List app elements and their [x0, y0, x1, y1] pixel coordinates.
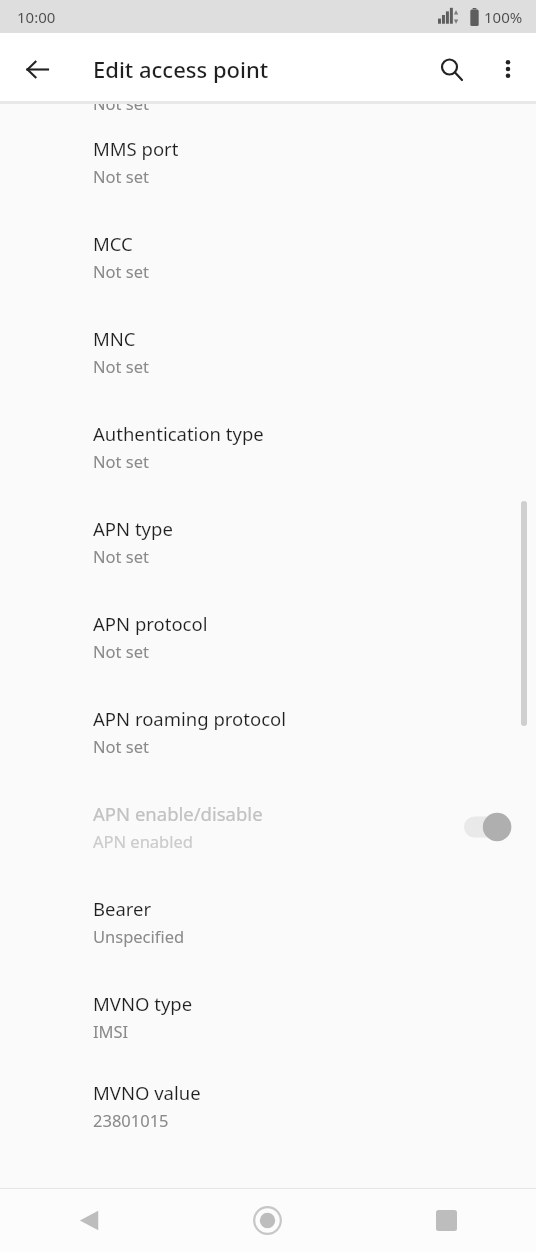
staticText: Not set: [93, 545, 149, 567]
staticText: Bearer: [93, 896, 152, 921]
staticText: Edit access point: [93, 54, 269, 84]
button[interactable]: Back: [0, 1189, 178, 1252]
button[interactable]: APN protocol: [0, 589, 536, 684]
staticText: MNC: [93, 326, 136, 351]
staticText: IMSI: [93, 1020, 129, 1042]
staticText: Not set: [93, 355, 149, 377]
staticText: MVNO value: [93, 1080, 201, 1105]
button[interactable]: Recent apps: [357, 1189, 536, 1252]
button[interactable]: MNC: [0, 304, 536, 399]
staticText: APN enable/disable: [93, 801, 263, 826]
button[interactable]: MVNO value: [0, 1064, 536, 1146]
staticText: 23801015: [93, 1109, 169, 1131]
button[interactable]: Home: [178, 1189, 357, 1252]
staticText: Authentication type: [93, 421, 264, 446]
staticText: APN type: [93, 516, 173, 541]
staticText: Not set: [93, 260, 149, 282]
staticText: 10:00: [17, 7, 56, 27]
button[interactable]: APN enable/disable toggle: [464, 810, 516, 844]
button[interactable]: APN roaming protocol: [0, 684, 536, 779]
staticText: MCC: [93, 231, 133, 256]
button[interactable]: Bearer: [0, 874, 536, 969]
button[interactable]: Search: [427, 45, 475, 93]
staticText: MMS port: [93, 136, 179, 161]
button[interactable]: Navigate up: [13, 45, 61, 93]
button[interactable]: APN type: [0, 494, 536, 589]
button[interactable]: MMS port: [0, 114, 536, 209]
staticText: APN enabled: [93, 830, 193, 852]
staticText: Unspecified: [93, 925, 185, 947]
button[interactable]: Not set: [0, 104, 536, 114]
button[interactable]: MCC: [0, 209, 536, 304]
staticText: Not set: [93, 104, 149, 114]
staticText: Not set: [93, 640, 149, 662]
button[interactable]: Authentication type: [0, 399, 536, 494]
staticText: Not set: [93, 735, 149, 757]
staticText: APN roaming protocol: [93, 706, 286, 731]
staticText: 100%: [484, 7, 523, 27]
staticText: Not set: [93, 165, 149, 187]
button[interactable]: APN enable/disable: [0, 779, 536, 874]
staticText: APN protocol: [93, 611, 208, 636]
button[interactable]: More options: [484, 45, 532, 93]
staticText: MVNO type: [93, 991, 193, 1016]
staticText: Not set: [93, 450, 149, 472]
button[interactable]: MVNO type: [0, 969, 536, 1064]
